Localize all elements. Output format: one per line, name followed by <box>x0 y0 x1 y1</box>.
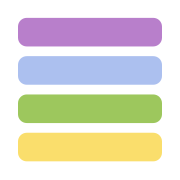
button[interactable]: Purple <box>18 18 162 46</box>
button[interactable]: Green <box>18 94 162 123</box>
button[interactable]: Yellow <box>18 133 162 161</box>
button[interactable]: Blue <box>18 56 162 85</box>
